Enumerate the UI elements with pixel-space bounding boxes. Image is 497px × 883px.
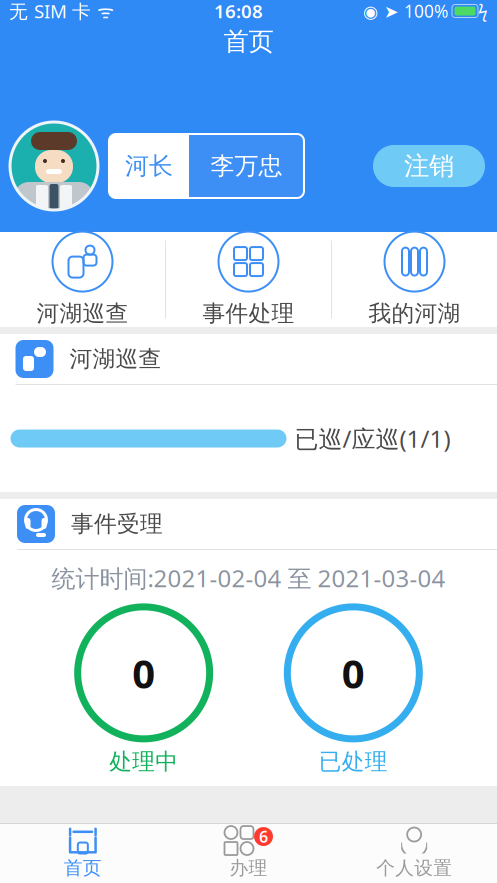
staticText: ϟ xyxy=(478,0,488,22)
staticText: 处理中 xyxy=(109,748,178,776)
staticText: ◉ ➤ 100% xyxy=(363,0,448,22)
staticText: 个人设置 xyxy=(376,856,452,879)
button[interactable]: 河长 xyxy=(109,134,189,198)
staticText: 6 xyxy=(259,826,268,847)
staticText: 首页 xyxy=(64,856,102,879)
button[interactable]: 首页 xyxy=(0,820,166,883)
button[interactable]: 个人设置 xyxy=(331,820,497,883)
staticText: 统计时间:2021-02-04 至 2021-03-04 xyxy=(51,562,445,594)
staticText: 0 xyxy=(342,646,365,699)
staticText: 事件受理 xyxy=(71,510,163,538)
button[interactable]: 6 xyxy=(166,820,331,883)
staticText: 首页 xyxy=(223,26,273,57)
button[interactable]: 李万忠 xyxy=(189,134,304,198)
staticText: 办理 xyxy=(229,856,267,879)
staticText: 河湖巡查 xyxy=(36,300,128,327)
staticText: 事件处理 xyxy=(202,300,294,327)
staticText: 已处理 xyxy=(319,748,388,776)
staticText: 河长 xyxy=(125,151,173,181)
staticText: 无 SIM 卡 ᯤ xyxy=(9,0,114,23)
staticText: 已巡/应巡(1/1) xyxy=(294,423,450,454)
staticText: 河湖巡查 xyxy=(69,345,161,373)
button[interactable]: 河湖巡查 xyxy=(0,222,165,337)
staticText: 0 xyxy=(132,646,155,699)
staticText: 李万忠 xyxy=(210,151,282,181)
staticText: 注销 xyxy=(404,150,454,181)
button[interactable]: 事件处理 xyxy=(166,222,331,337)
button[interactable]: 我的河湖 xyxy=(332,222,497,337)
staticText: 我的河湖 xyxy=(368,300,460,327)
staticText: 16:08 xyxy=(214,0,263,23)
button[interactable]: 注销 xyxy=(373,145,485,187)
